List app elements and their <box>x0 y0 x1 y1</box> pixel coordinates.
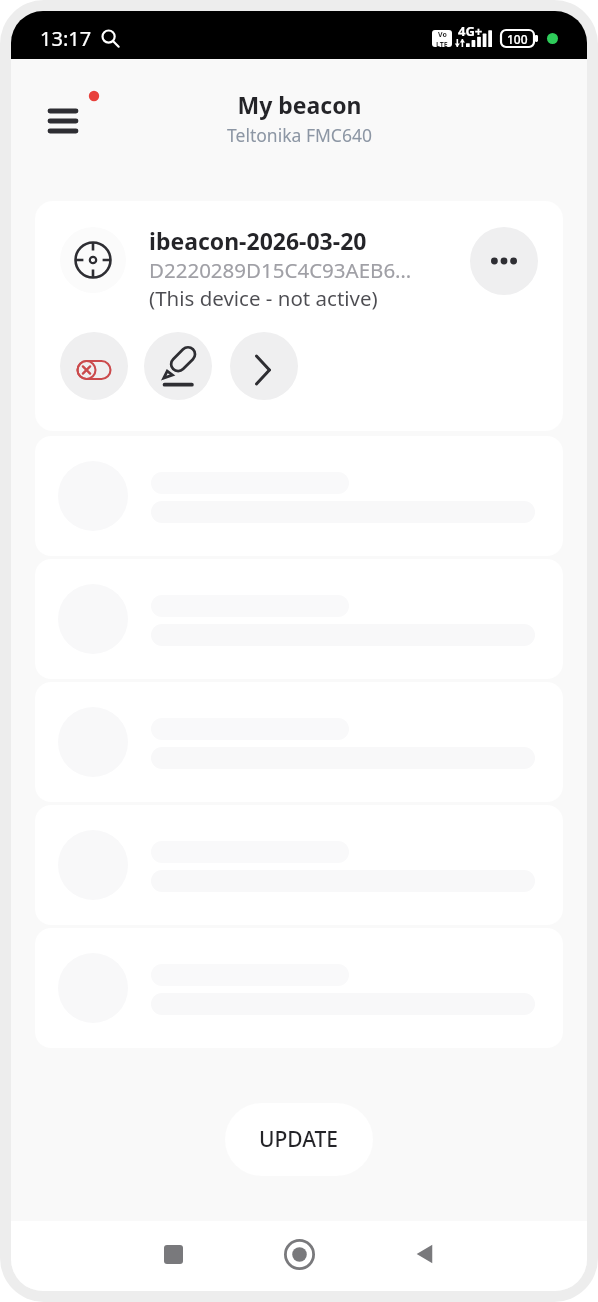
button[interactable]: More options <box>470 227 538 295</box>
button[interactable]: Home <box>267 1222 331 1286</box>
button[interactable]: Recents <box>141 1222 205 1286</box>
staticText: UPDATE <box>259 1125 339 1154</box>
staticText: Teltonika FMC640 <box>227 123 372 147</box>
staticText: Vo <box>438 30 447 40</box>
staticText: ibeacon-2026-03-20 <box>149 225 367 256</box>
staticText: 13:17 <box>40 25 92 52</box>
staticText: 100 <box>507 31 528 47</box>
button[interactable]: Toggle off <box>60 332 128 400</box>
staticText: LTE <box>436 40 448 47</box>
staticText: My beacon <box>237 89 362 120</box>
button[interactable]: Details <box>230 332 298 400</box>
staticText: (This device - not active) <box>149 284 378 312</box>
staticText: 4G+ <box>458 22 483 40</box>
button[interactable]: Back <box>393 1222 457 1286</box>
button[interactable]: Menu <box>41 80 97 136</box>
button[interactable]: Edit <box>144 332 212 400</box>
button[interactable]: ibeacon-2026-03-20 <box>35 201 563 431</box>
staticText: D2220289D15C4C93AEB6… <box>149 256 412 284</box>
button[interactable]: UPDATE <box>225 1103 373 1176</box>
